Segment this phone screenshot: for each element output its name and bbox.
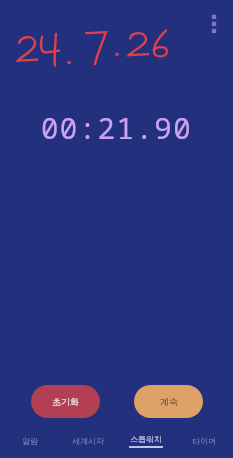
staticText: 알람 xyxy=(22,436,38,446)
staticText: 00:21.90 xyxy=(0,108,233,147)
button[interactable]: 계속 xyxy=(134,385,203,418)
button[interactable]: 스톱워치 xyxy=(117,424,175,458)
staticText: 초기화 xyxy=(52,396,79,407)
button[interactable]: 세계시각 xyxy=(59,424,117,458)
button[interactable]: 알람 xyxy=(0,424,59,458)
button[interactable]: 타이머 xyxy=(175,424,233,458)
staticText: 계속 xyxy=(160,396,178,407)
button[interactable]: More options xyxy=(203,10,225,40)
staticText: 스톱워치 xyxy=(130,434,162,444)
button[interactable]: 초기화 xyxy=(31,385,100,418)
staticText: 타이머 xyxy=(192,436,216,446)
staticText: 세계시각 xyxy=(72,436,104,446)
